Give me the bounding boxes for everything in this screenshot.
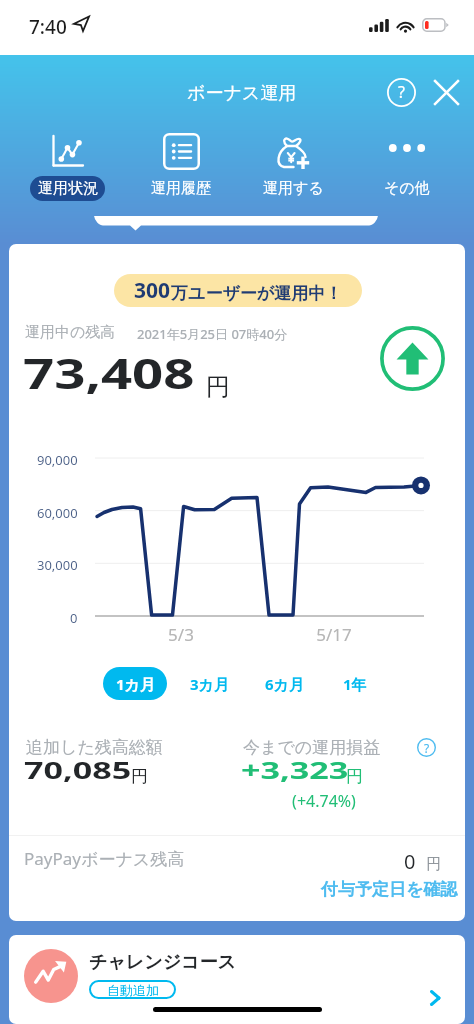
staticText: ?: [398, 81, 405, 103]
button[interactable]: 運用状況: [17, 130, 117, 201]
button[interactable]: Help: [385, 76, 417, 108]
staticText: 追加した残高総額: [26, 737, 163, 758]
staticText: 90,000: [37, 451, 78, 467]
staticText: 1年: [343, 674, 367, 694]
staticText: 2021年5月25日 07時40分: [137, 325, 288, 343]
staticText: チャレンジコース: [89, 951, 236, 974]
button[interactable]: 付与予定日を確認: [296, 874, 458, 904]
button[interactable]: 1カ月: [103, 667, 167, 700]
staticText: 300: [134, 276, 171, 305]
staticText: (+4.74%): [259, 790, 389, 812]
staticText: 60,000: [37, 504, 78, 520]
staticText: 付与予定日を確認: [321, 879, 458, 900]
staticText: 1カ月: [116, 674, 155, 694]
button[interactable]: 1年: [335, 667, 375, 700]
button[interactable]: Add funds: [380, 326, 445, 391]
staticText: +3,323: [241, 753, 349, 786]
staticText: 運用状況: [38, 179, 98, 198]
button[interactable]: チャレンジコース: [9, 935, 465, 1024]
staticText: 円: [206, 372, 230, 402]
staticText: ボーナス運用: [187, 82, 297, 105]
staticText: 円: [346, 766, 363, 787]
staticText: 運用履歴: [151, 179, 211, 198]
button[interactable]: 運用する: [243, 130, 343, 201]
staticText: 0: [404, 848, 416, 875]
staticText: 73,408: [23, 345, 195, 401]
button[interactable]: Close: [430, 76, 462, 108]
staticText: 70,085: [24, 753, 132, 786]
button[interactable]: 運用履歴: [131, 130, 231, 201]
staticText: ?: [424, 740, 430, 756]
staticText: 今までの運用損益: [243, 737, 381, 758]
staticText: 自動追加: [107, 982, 159, 998]
staticText: その他: [384, 179, 430, 198]
staticText: 運用する: [263, 179, 324, 198]
staticText: 万ユーザーが運用中！: [171, 283, 343, 304]
button[interactable]: 3カ月: [183, 667, 235, 700]
button[interactable]: その他: [357, 130, 457, 201]
button[interactable]: 6カ月: [258, 667, 310, 700]
staticText: 7:40: [29, 14, 67, 40]
staticText: 円: [426, 855, 441, 874]
staticText: 6カ月: [265, 674, 304, 694]
staticText: PayPayボーナス残高: [24, 847, 185, 870]
staticText: 30,000: [37, 556, 78, 572]
staticText: 円: [131, 766, 148, 787]
staticText: 5/17: [309, 623, 359, 646]
staticText: 0: [70, 609, 78, 625]
button[interactable]: Info: [415, 736, 438, 759]
staticText: 3カ月: [190, 674, 229, 694]
staticText: 運用中の残高: [25, 323, 116, 342]
staticText: 5/3: [156, 623, 206, 646]
